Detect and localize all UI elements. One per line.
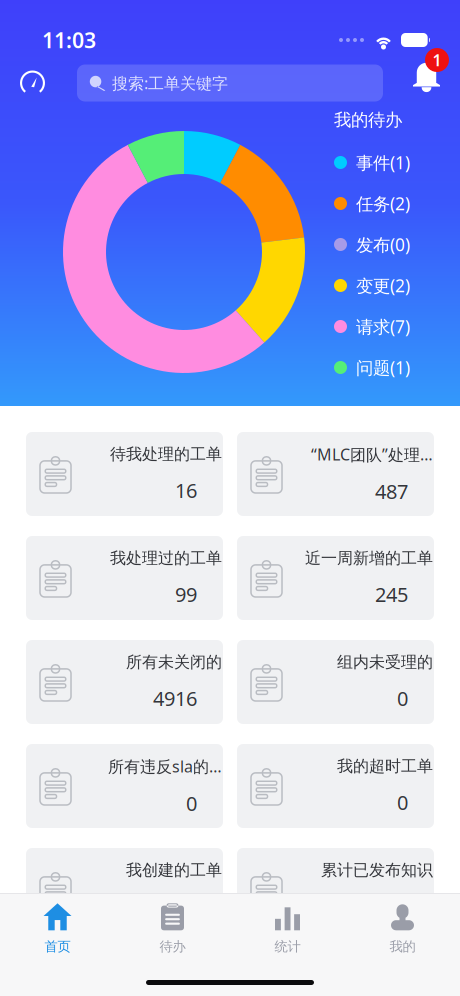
staticText: 245 (375, 581, 408, 608)
staticText: 事件(1) (356, 151, 410, 174)
staticText: 我创建的工单 (126, 860, 222, 880)
button[interactable]: 组内未受理的 (237, 640, 434, 724)
staticText: 我的 (389, 938, 415, 955)
staticText: 组内未受理的 (337, 652, 433, 672)
staticText: 0 (397, 789, 408, 816)
button[interactable]: 所有未关闭的 (26, 640, 223, 724)
button[interactable]: 我的 (345, 894, 460, 962)
staticText: 所有违反sla的… (108, 756, 222, 777)
staticText: 0 (397, 893, 408, 920)
staticText: 4916 (153, 685, 197, 712)
button[interactable]: 通知 (400, 59, 443, 107)
staticText: 所有未关闭的 (126, 652, 222, 672)
button[interactable]: 统计 (230, 894, 345, 962)
staticText: 我的待办 (334, 109, 402, 131)
staticText: 我处理过的工单 (110, 548, 222, 568)
button[interactable]: 首页 (0, 894, 115, 962)
button[interactable]: 仪表盘 (0, 61, 77, 105)
staticText: 99 (175, 581, 197, 608)
staticText: 我的超时工单 (337, 756, 433, 776)
staticText: 发布(0) (356, 233, 410, 256)
button[interactable]: 待我处理的工单 (26, 432, 223, 516)
staticText: 待办 (159, 938, 185, 955)
staticText: 0 (186, 790, 197, 816)
staticText: 16 (175, 477, 197, 504)
staticText: 搜索:工单关键字 (112, 72, 228, 94)
staticText: 问题(1) (356, 356, 410, 379)
staticText: 1 (186, 893, 197, 920)
staticText: 11:03 (42, 26, 96, 54)
staticText: 请求(7) (356, 315, 410, 338)
staticText: 统计 (274, 938, 300, 955)
button[interactable]: 待办 (115, 894, 230, 962)
button[interactable]: 累计已发布知识 (237, 848, 434, 932)
staticText: 首页 (44, 938, 70, 955)
staticText: 待我处理的工单 (110, 444, 222, 464)
staticText: 累计已发布知识 (321, 860, 433, 880)
staticText: 487 (375, 478, 408, 504)
staticText: 1 (432, 49, 441, 71)
button[interactable]: 我的超时工单 (237, 744, 434, 828)
button[interactable]: 所有违反sla的… (26, 744, 223, 828)
staticText: “MLC团队”处理… (311, 444, 433, 465)
staticText: 变更(2) (356, 274, 410, 297)
button[interactable]: 我创建的工单 (26, 848, 223, 932)
staticText: 任务(2) (356, 192, 410, 215)
button[interactable]: 近一周新增的工单 (237, 536, 434, 620)
staticText: 0 (397, 685, 408, 712)
button[interactable]: “MLC团队”处理… (237, 432, 434, 516)
button[interactable]: 我处理过的工单 (26, 536, 223, 620)
staticText: 近一周新增的工单 (305, 548, 433, 568)
